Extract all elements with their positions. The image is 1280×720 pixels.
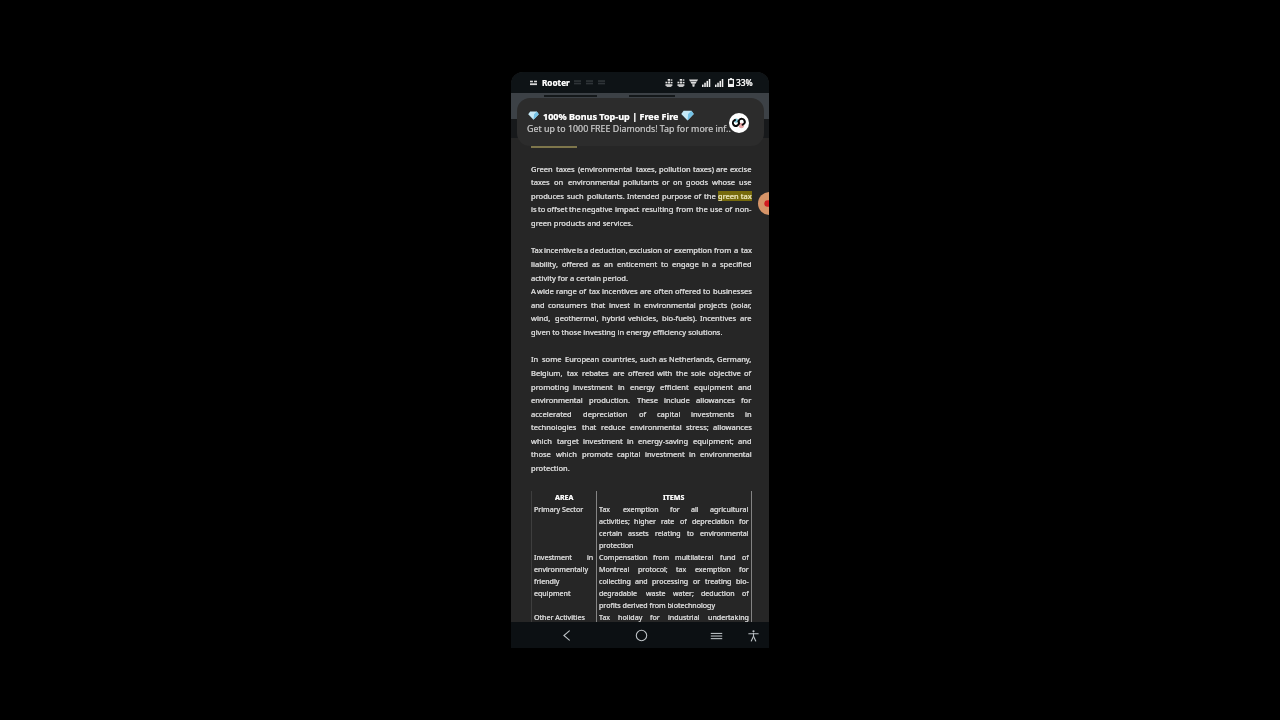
staticText: for: [650, 612, 660, 622]
staticText: waste: [646, 588, 666, 598]
staticText: (environmental: [578, 164, 633, 174]
staticText: for: [741, 395, 752, 405]
staticText: certain: [599, 528, 623, 538]
staticText: whose: [712, 177, 736, 187]
staticText: protection.: [531, 463, 570, 473]
staticText: allowances: [713, 422, 752, 432]
staticText: investments: [691, 409, 735, 419]
staticText: processing: [652, 576, 689, 586]
staticText: a: [734, 245, 739, 255]
staticText: In: [531, 354, 539, 364]
staticText: in: [745, 409, 752, 419]
staticText: negative: [582, 204, 613, 214]
button[interactable]: Accessibility: [740, 622, 766, 648]
staticText: target: [557, 436, 579, 446]
staticText: reduce: [601, 422, 626, 432]
staticText: that: [582, 422, 597, 432]
staticText: on: [673, 177, 683, 187]
staticText: and: [635, 576, 648, 586]
staticText: are: [716, 164, 728, 174]
staticText: incentives: [602, 286, 638, 296]
staticText: sole: [691, 368, 706, 378]
staticText: Rooter: [542, 77, 570, 88]
staticText: environmental: [644, 300, 696, 310]
staticText: vehicles,: [628, 313, 659, 323]
button[interactable]: Screen recorder: [758, 192, 769, 215]
staticText: Get up to 1000 FREE Diamonds! Tap for mo…: [527, 123, 731, 135]
staticText: on: [554, 177, 564, 187]
staticText: ITEMS: [663, 492, 685, 502]
staticText: A: [531, 286, 536, 296]
button[interactable]: Back: [553, 622, 579, 648]
staticText: deduction: [701, 588, 735, 598]
staticText: all: [691, 504, 699, 514]
staticText: such: [640, 354, 657, 364]
staticText: specified: [720, 259, 752, 269]
staticText: deduction,: [590, 245, 628, 255]
staticText: of: [744, 368, 752, 378]
staticText: exclusion: [629, 245, 662, 255]
staticText: higher: [634, 516, 656, 526]
staticText: equipment;: [693, 436, 734, 446]
staticText: taxes: [531, 177, 550, 187]
staticText: Tax: [599, 504, 611, 514]
staticText: use: [739, 177, 752, 187]
staticText: a: [712, 259, 717, 269]
staticText: invest: [609, 300, 631, 310]
staticText: the: [696, 204, 708, 214]
staticText: use: [710, 204, 723, 214]
staticText: 100% Bonus Top-up | Free Fire: [543, 110, 679, 122]
staticText: pollution: [659, 164, 691, 174]
staticText: offered: [628, 368, 654, 378]
staticText: non-: [735, 204, 752, 214]
staticText: taxes): [693, 164, 714, 174]
staticText: environmental: [531, 395, 583, 405]
staticText: of: [742, 552, 749, 562]
staticText: the: [569, 204, 581, 214]
staticText: assets: [628, 528, 649, 538]
staticText: green products and services.: [531, 218, 633, 228]
staticText: wide: [537, 286, 554, 296]
staticText: Other Activities: [534, 612, 585, 622]
staticText: offered: [562, 259, 588, 269]
staticText: of: [725, 204, 733, 214]
staticText: exemption: [623, 504, 659, 514]
staticText: promoting: [531, 382, 569, 392]
staticText: investment: [573, 382, 613, 392]
staticText: energy: [630, 382, 655, 392]
staticText: production.: [589, 395, 631, 405]
staticText: are: [740, 313, 752, 323]
staticText: capital: [617, 449, 641, 459]
staticText: European: [565, 354, 600, 364]
staticText: wind,: [531, 313, 551, 323]
staticText: tax: [741, 245, 752, 255]
staticText: of: [742, 588, 749, 598]
staticText: environmentally: [534, 564, 589, 574]
staticText: These: [637, 395, 658, 405]
staticText: green tax: [718, 191, 752, 201]
staticText: objective: [709, 368, 741, 378]
button[interactable]: 100% Bonus Top-up | Free Fire: [517, 98, 764, 146]
staticText: include: [664, 395, 690, 405]
staticText: is: [577, 245, 583, 255]
button[interactable]: Home: [628, 622, 654, 648]
staticText: in: [634, 300, 641, 310]
staticText: an: [604, 259, 613, 269]
staticText: is: [531, 204, 537, 214]
button[interactable]: Recent apps: [703, 622, 729, 648]
staticText: consumers: [548, 300, 588, 310]
staticText: water;: [673, 588, 694, 598]
staticText: enticement: [617, 259, 658, 269]
staticText: protocol;: [638, 564, 668, 574]
staticText: Belgium,: [531, 368, 563, 378]
staticText: countries,: [602, 354, 638, 364]
staticText: Germany,: [717, 354, 752, 364]
staticText: with: [657, 368, 673, 378]
staticText: Netherlands,: [669, 354, 715, 364]
staticText: Montreal: [599, 564, 630, 574]
staticText: to: [687, 528, 694, 538]
staticText: excise: [730, 164, 752, 174]
staticText: the: [676, 368, 688, 378]
staticText: efficient: [660, 382, 689, 392]
staticText: Investment: [534, 552, 572, 562]
